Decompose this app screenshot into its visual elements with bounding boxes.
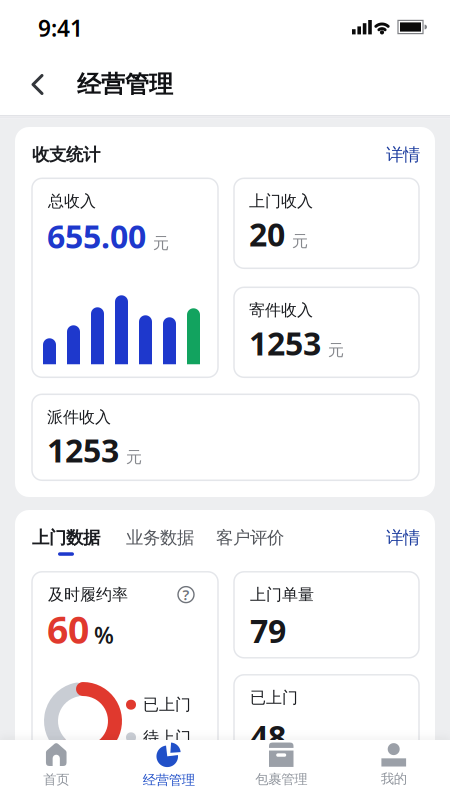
- staticText: 业务数据: [126, 527, 194, 548]
- staticText: 首页: [43, 771, 69, 788]
- button[interactable]: 详情: [386, 144, 420, 165]
- button[interactable]: 首页: [0, 740, 112, 800]
- staticText: 元: [328, 340, 344, 360]
- staticText: 48: [250, 715, 286, 758]
- staticText: 经营管理: [77, 70, 173, 99]
- staticText: 元: [153, 233, 169, 253]
- staticText: 上门收入: [249, 191, 313, 211]
- staticText: 详情: [386, 144, 420, 165]
- staticText: 总收入: [48, 191, 96, 211]
- staticText: 我的: [381, 770, 407, 787]
- staticText: 1253: [47, 429, 119, 471]
- staticText: 元: [126, 447, 142, 467]
- staticText: 经营管理: [143, 772, 195, 788]
- staticText: 及时履约率: [48, 585, 128, 604]
- staticText: 包裹管理: [255, 771, 307, 787]
- staticText: 20: [249, 213, 285, 255]
- staticText: 客户评价: [216, 527, 284, 548]
- button[interactable]: 详情: [386, 527, 420, 556]
- staticText: 收支统计: [32, 144, 100, 165]
- staticText: 79: [250, 609, 286, 652]
- staticText: 9:41: [38, 13, 83, 43]
- staticText: 寄件收入: [249, 300, 313, 320]
- button[interactable]: 我的: [337, 740, 450, 800]
- staticText: ?: [182, 585, 189, 604]
- staticText: 已上门: [250, 688, 298, 707]
- staticText: %: [94, 620, 114, 650]
- button[interactable]: 客户评价: [194, 527, 284, 556]
- staticText: 元: [292, 231, 308, 251]
- button[interactable]: 业务数据: [100, 527, 194, 556]
- button[interactable]: 经营管理: [112, 740, 225, 800]
- staticText: 655.00: [47, 215, 146, 257]
- staticText: 已上门: [143, 695, 191, 715]
- staticText: 详情: [386, 527, 420, 548]
- button[interactable]: 上门数据: [32, 527, 100, 556]
- button[interactable]: Back: [16, 62, 60, 106]
- staticText: 上门数据: [32, 527, 100, 548]
- staticText: 派件收入: [47, 407, 111, 427]
- button[interactable]: 包裹管理: [225, 740, 337, 800]
- button[interactable]: 说明: [178, 587, 194, 603]
- staticText: 待上门: [143, 727, 191, 747]
- staticText: 1253: [249, 322, 321, 364]
- staticText: 60: [47, 604, 89, 654]
- staticText: 上门单量: [250, 585, 314, 604]
